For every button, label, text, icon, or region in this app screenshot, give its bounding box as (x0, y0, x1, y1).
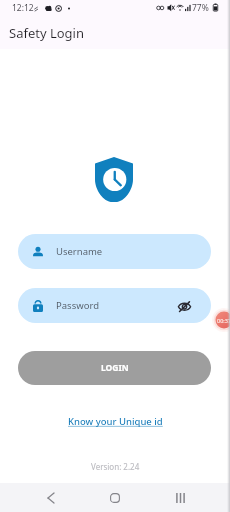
button[interactable]: LOGIN (18, 351, 211, 385)
staticText: Safety Login (9, 24, 84, 42)
staticText: LOGIN (101, 362, 129, 374)
staticText: 00:37 (217, 317, 230, 324)
button[interactable]: Timer (212, 308, 230, 332)
button[interactable]: Back (37, 483, 65, 512)
button[interactable]: Password (18, 288, 211, 323)
button[interactable]: Show password (175, 297, 193, 315)
staticText: Version: 2.24 (91, 461, 140, 472)
staticText: Password (56, 299, 99, 312)
staticText: 77% (192, 2, 209, 14)
staticText: 12:12 (12, 2, 34, 14)
button[interactable]: Know your Unique id (66, 413, 165, 430)
staticText: Username (56, 245, 103, 258)
button[interactable]: Username (18, 234, 211, 269)
button[interactable]: Home (101, 483, 129, 512)
button[interactable]: Recent apps (166, 483, 194, 512)
